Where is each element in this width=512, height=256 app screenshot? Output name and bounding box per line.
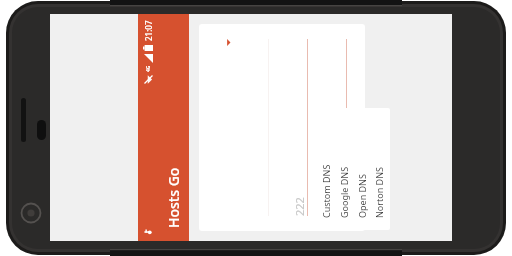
staticText: Google DNS [338, 166, 350, 218]
staticText: Open DNS [356, 174, 368, 218]
button[interactable]: Open DNS [353, 108, 371, 230]
button[interactable]: 222 [290, 39, 308, 216]
staticText: Custom DNS [320, 164, 332, 218]
staticText: Norton DNS [373, 167, 385, 218]
button[interactable] [251, 39, 269, 216]
staticText: 21:07 [143, 20, 154, 41]
staticText: 220 [331, 197, 346, 216]
button[interactable]: 220 [329, 39, 347, 216]
button[interactable]: Google DNS [335, 108, 353, 230]
button[interactable]: Custom DNS [317, 108, 335, 230]
staticText: 222 [292, 197, 307, 216]
button[interactable]: DNS preset selector [215, 39, 241, 216]
staticText: 4G [145, 65, 152, 72]
staticText: Hosts Go [164, 167, 183, 228]
button[interactable]: Norton DNS [371, 108, 387, 230]
